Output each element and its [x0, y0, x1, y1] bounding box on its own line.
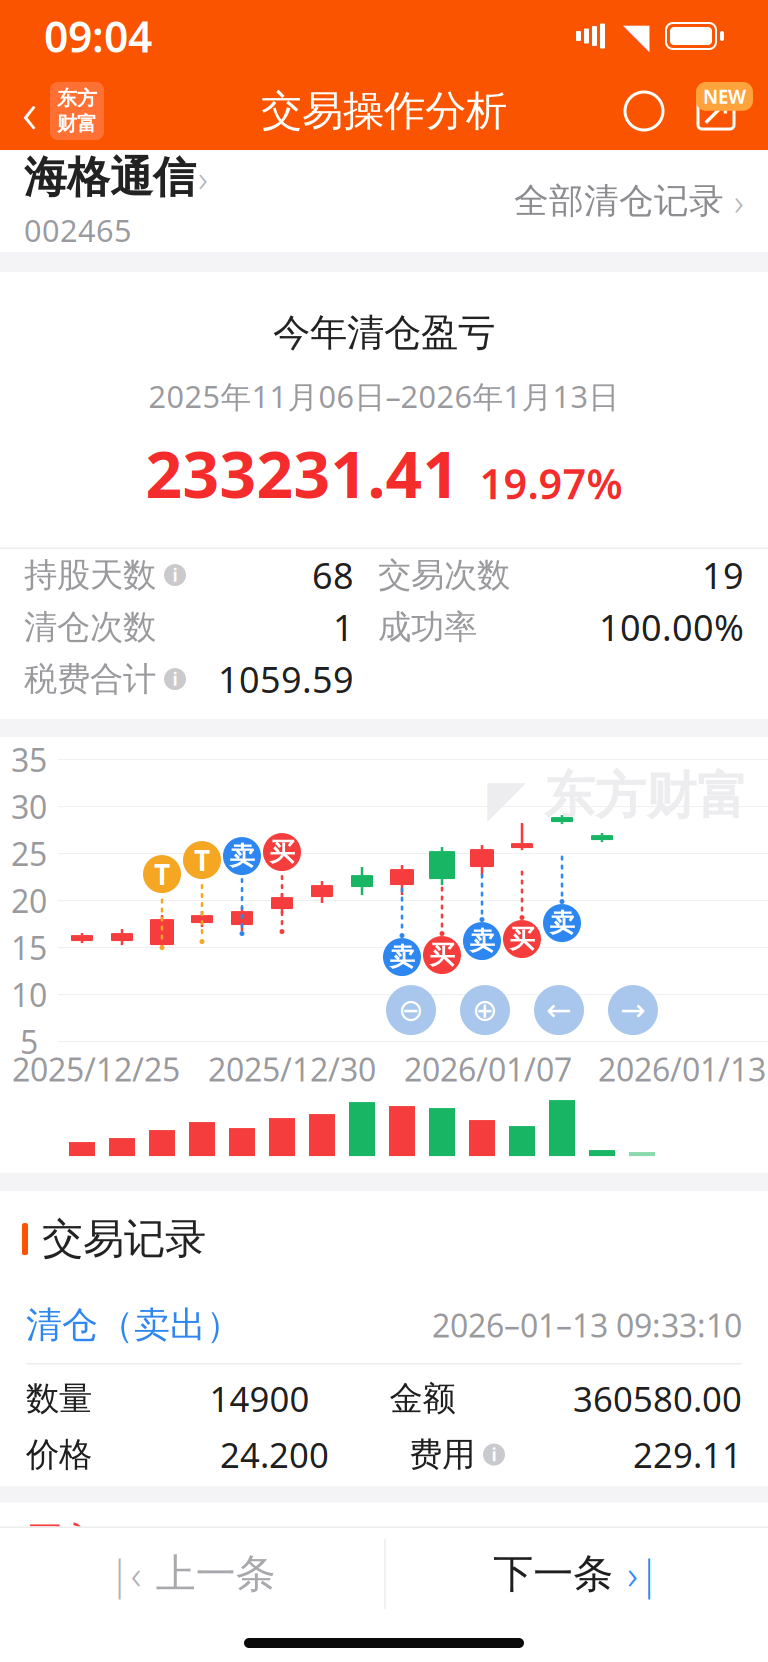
staticText: 买 — [509, 923, 534, 955]
staticText: 229.11 — [633, 1432, 742, 1478]
staticText: i — [172, 668, 177, 691]
staticText: 卖 — [469, 925, 494, 957]
button[interactable]: |‹ — [0, 1528, 384, 1620]
staticText: 2026–01–13 09:33:10 — [432, 1304, 742, 1346]
staticText: → — [620, 993, 646, 1027]
staticText: |‹ — [109, 1547, 142, 1600]
staticText: 买入 — [26, 1518, 98, 1563]
staticText: 25 — [11, 832, 47, 875]
staticText: 21.610 — [240, 1647, 349, 1662]
staticText: 买 — [269, 836, 294, 868]
staticText: 15 — [11, 926, 47, 969]
button[interactable]: 全部清仓记录 — [514, 156, 768, 246]
staticText: 价格 — [26, 1434, 92, 1475]
staticText: 360580.00 — [573, 1376, 742, 1422]
staticText: 清仓（卖出） — [26, 1303, 242, 1347]
button[interactable]: Zoom in — [460, 985, 510, 1035]
button[interactable]: 海格通信 — [0, 139, 208, 262]
staticText: 海格通信 — [24, 151, 196, 204]
staticText: 交易记录 — [42, 1214, 206, 1264]
staticText: 卖 — [549, 907, 574, 939]
staticText: ◤ 东方财富 — [487, 765, 748, 827]
button[interactable]: Pan right — [608, 985, 658, 1035]
staticText: ‹ — [22, 72, 38, 150]
staticText: 财富 — [57, 111, 97, 136]
staticText: 买 — [429, 939, 454, 971]
staticText: 税费合计 — [24, 659, 156, 699]
staticText: 交易次数 — [378, 555, 510, 595]
staticText: 2026/01/07 — [404, 1048, 572, 1090]
staticText: 2026/01/13 — [598, 1048, 766, 1090]
staticText: 交易操作分析 — [261, 86, 507, 136]
button[interactable]: Back — [0, 75, 126, 147]
staticText: i — [172, 564, 177, 587]
staticText: 19 — [702, 551, 744, 599]
staticText: ›| — [627, 1547, 660, 1600]
staticText: › — [734, 176, 744, 226]
staticText: 2025/12/25 — [12, 1048, 180, 1090]
staticText: 20 — [11, 879, 47, 922]
staticText: 35 — [11, 738, 47, 781]
staticText: 2026–01–12 10:09:08 — [432, 1519, 742, 1562]
staticText: 数量 — [26, 1378, 92, 1419]
button[interactable]: Zoom out — [386, 985, 436, 1035]
staticText: T — [154, 855, 170, 893]
staticText: 成功率 — [378, 607, 477, 647]
staticText: 30 — [11, 785, 47, 828]
staticText: 14900 — [209, 1376, 309, 1422]
staticText: ◥ — [623, 16, 650, 56]
staticText: 卖 — [389, 941, 414, 973]
staticText: 上一条 — [156, 1549, 276, 1598]
staticText: 1059.59 — [218, 655, 354, 703]
staticText: 金额 — [389, 1378, 455, 1419]
staticText: 09:04 — [44, 8, 152, 64]
staticText: 10 — [11, 973, 47, 1016]
button[interactable]: Pan left — [534, 985, 584, 1035]
staticText: ⊕ — [472, 993, 498, 1027]
staticText: T — [194, 841, 210, 879]
staticText: 费用 — [409, 1434, 475, 1475]
button[interactable]: Refresh — [614, 79, 674, 143]
staticText: 233231.41 — [145, 431, 459, 516]
staticText: 100.00% — [599, 603, 744, 651]
button[interactable]: 下一条 — [386, 1528, 768, 1620]
staticText: 36737.00 — [593, 1591, 742, 1637]
staticText: 卖 — [229, 840, 254, 872]
staticText: 5 — [20, 1020, 38, 1063]
staticText: 68 — [312, 551, 354, 599]
staticText: 19.97% — [479, 456, 622, 511]
staticText: 清仓次数 — [24, 607, 156, 647]
staticText: 东方 — [57, 86, 97, 110]
staticText: 2025年11月06日–2026年1月13日 — [148, 376, 619, 417]
staticText: 今年清仓盈亏 — [273, 310, 495, 356]
staticText: NEW — [703, 84, 746, 109]
staticText: i — [491, 1443, 496, 1466]
staticText: ↗ — [699, 88, 733, 134]
staticText: ⊖ — [398, 993, 424, 1027]
staticText: 24.200 — [220, 1432, 329, 1478]
staticText: 持股天数 — [24, 555, 156, 595]
staticText: 002465 — [24, 210, 132, 250]
button[interactable]: Share — [674, 78, 758, 144]
staticText: 全部清仓记录 — [514, 180, 724, 222]
staticText: 下一条 — [493, 1549, 613, 1598]
staticText: 1 — [333, 603, 354, 651]
staticText: › — [198, 153, 208, 202]
staticText: ← — [546, 993, 572, 1027]
staticText: 2025/12/30 — [208, 1048, 376, 1090]
